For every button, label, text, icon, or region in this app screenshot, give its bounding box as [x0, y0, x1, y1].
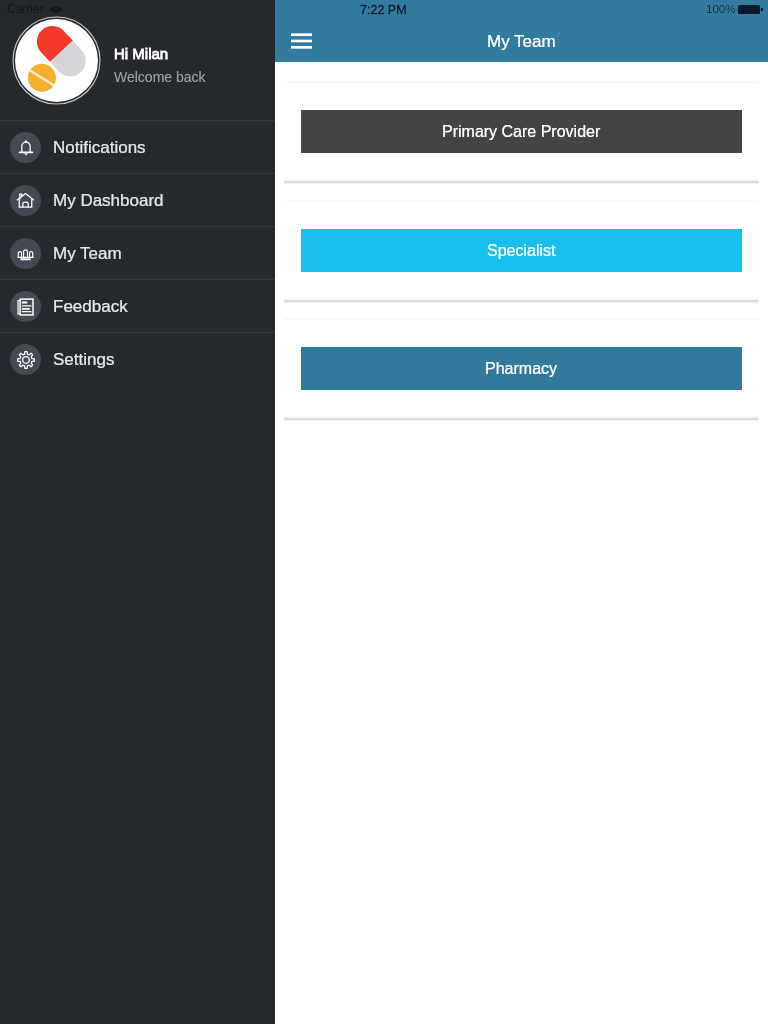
button[interactable]: My Dashboard: [0, 174, 275, 226]
staticText: Feedback: [53, 297, 128, 316]
button[interactable]: Pharmacy: [301, 347, 742, 390]
staticText: Hi Milan: [114, 45, 169, 62]
button[interactable]: Feedback: [0, 280, 275, 332]
staticText: My Team: [53, 244, 122, 263]
staticText: Specialist: [487, 242, 556, 260]
staticText: 100%: [706, 3, 736, 16]
staticText: Pharmacy: [485, 360, 558, 378]
button[interactable]: My Team: [0, 227, 275, 279]
button[interactable]: Notifications: [0, 121, 275, 173]
staticText: Primary Care Provider: [442, 123, 601, 141]
button[interactable]: Open navigation menu: [279, 20, 323, 62]
button[interactable]: Primary Care Provider: [301, 110, 742, 153]
button[interactable]: Settings: [0, 333, 275, 385]
staticText: Welcome back: [114, 69, 206, 85]
staticText: 7:22 PM: [360, 3, 407, 17]
staticText: Carrier: [7, 2, 44, 15]
staticText: My Team: [487, 32, 556, 51]
button[interactable]: Specialist: [301, 229, 742, 272]
staticText: My Dashboard: [53, 191, 164, 210]
staticText: Settings: [53, 350, 115, 369]
staticText: Notifications: [53, 138, 146, 157]
